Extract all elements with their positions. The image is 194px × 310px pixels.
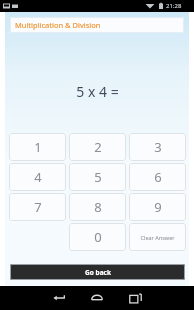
staticText: 1: [34, 138, 42, 156]
staticText: 0: [94, 228, 102, 246]
button[interactable]: Home: [86, 287, 108, 309]
button[interactable]: Go back: [10, 264, 185, 280]
staticText: 3: [154, 138, 162, 156]
button[interactable]: 3: [129, 133, 186, 161]
button[interactable]: Recent apps: [124, 287, 146, 309]
staticText: 6: [154, 168, 162, 186]
button[interactable]: 4: [9, 163, 66, 191]
staticText: Clear Answer: [140, 234, 175, 241]
button[interactable]: Multiplication & Division: [10, 17, 184, 33]
staticText: 5: [94, 168, 102, 186]
button[interactable]: Back: [48, 287, 70, 309]
button[interactable]: 6: [129, 163, 186, 191]
button[interactable]: 5: [69, 163, 126, 191]
staticText: Multiplication & Division: [15, 20, 101, 30]
button[interactable]: 9: [129, 193, 186, 221]
button[interactable]: 2: [69, 133, 126, 161]
button[interactable]: Clear Answer: [129, 223, 186, 251]
button[interactable]: 8: [69, 193, 126, 221]
staticText: 5 x 4 =: [76, 82, 119, 101]
staticText: 4: [34, 168, 42, 186]
staticText: Go back: [85, 268, 111, 277]
button[interactable]: 0: [69, 223, 126, 251]
staticText: 7: [34, 198, 42, 216]
button[interactable]: 7: [9, 193, 66, 221]
staticText: 2: [94, 138, 102, 156]
staticText: 9: [154, 198, 162, 216]
staticText: 21:28: [166, 2, 182, 10]
staticText: 8: [94, 198, 102, 216]
button[interactable]: 1: [9, 133, 66, 161]
